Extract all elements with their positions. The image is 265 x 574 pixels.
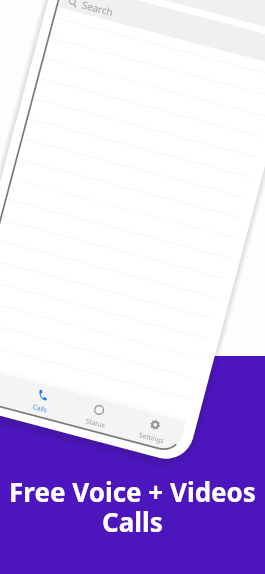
other: Status: [92, 403, 106, 417]
staticText: Search: [80, 0, 115, 19]
button[interactable]: Search: [57, 0, 265, 66]
staticText: Status: [85, 416, 106, 430]
staticText: Free Voice + Videos Calls: [0, 474, 265, 540]
button[interactable]: Calls: [9, 377, 74, 424]
button[interactable]: Chats: [0, 363, 18, 409]
other: Calls: [36, 388, 50, 402]
staticText: Settings: [138, 430, 165, 445]
button[interactable]: Settings: [121, 407, 186, 453]
button[interactable]: Status: [65, 392, 130, 439]
other: Settings: [148, 417, 163, 432]
staticText: Calls: [32, 402, 48, 415]
